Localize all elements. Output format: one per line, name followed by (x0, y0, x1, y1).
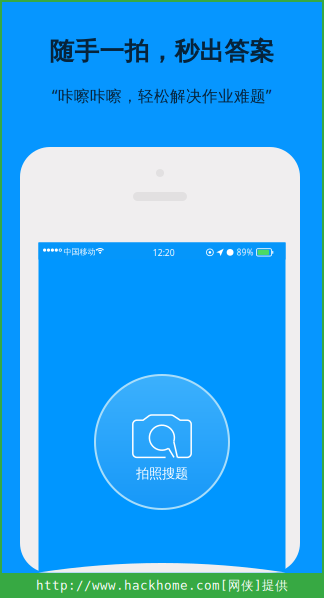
staticText: 12:20 (152, 247, 174, 258)
staticText: 随手一拍，秒出答案 (49, 36, 274, 67)
staticText: “咔嚓咔嚓，轻松解决作业难题” (52, 85, 272, 106)
staticText: 拍照搜题 (136, 465, 188, 482)
staticText: 中国移动 (63, 247, 95, 257)
staticText: http://www.hackhome.com[网侠]提供 (36, 578, 288, 593)
staticText: 89% (236, 247, 253, 258)
button[interactable]: 拍照搜题 (95, 375, 229, 509)
